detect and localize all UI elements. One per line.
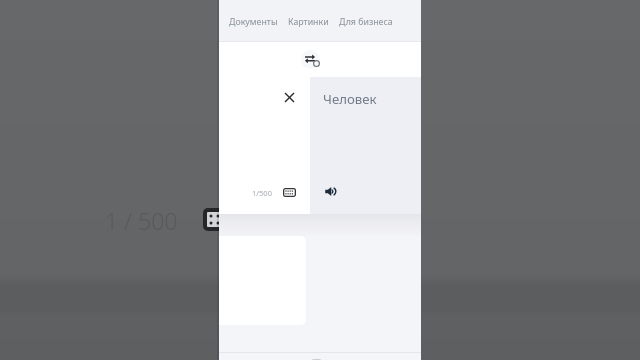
button[interactable]: Для бизнеса bbox=[337, 11, 395, 33]
staticText: 1/500 bbox=[252, 188, 272, 198]
staticText: Для бизнеса bbox=[339, 16, 393, 28]
staticText: 1 / 500 bbox=[105, 205, 178, 236]
staticText: Документы bbox=[229, 16, 278, 28]
button[interactable]: Swap languages bbox=[305, 55, 315, 63]
button[interactable]: Keyboard bbox=[283, 188, 296, 197]
staticText: Человек bbox=[323, 90, 377, 108]
button[interactable]: Документы bbox=[227, 11, 280, 33]
button[interactable]: Listen bbox=[325, 186, 338, 197]
button[interactable]: Clear text bbox=[281, 89, 297, 105]
button[interactable]: Картинки bbox=[286, 11, 331, 33]
staticText: Картинки bbox=[288, 16, 329, 28]
